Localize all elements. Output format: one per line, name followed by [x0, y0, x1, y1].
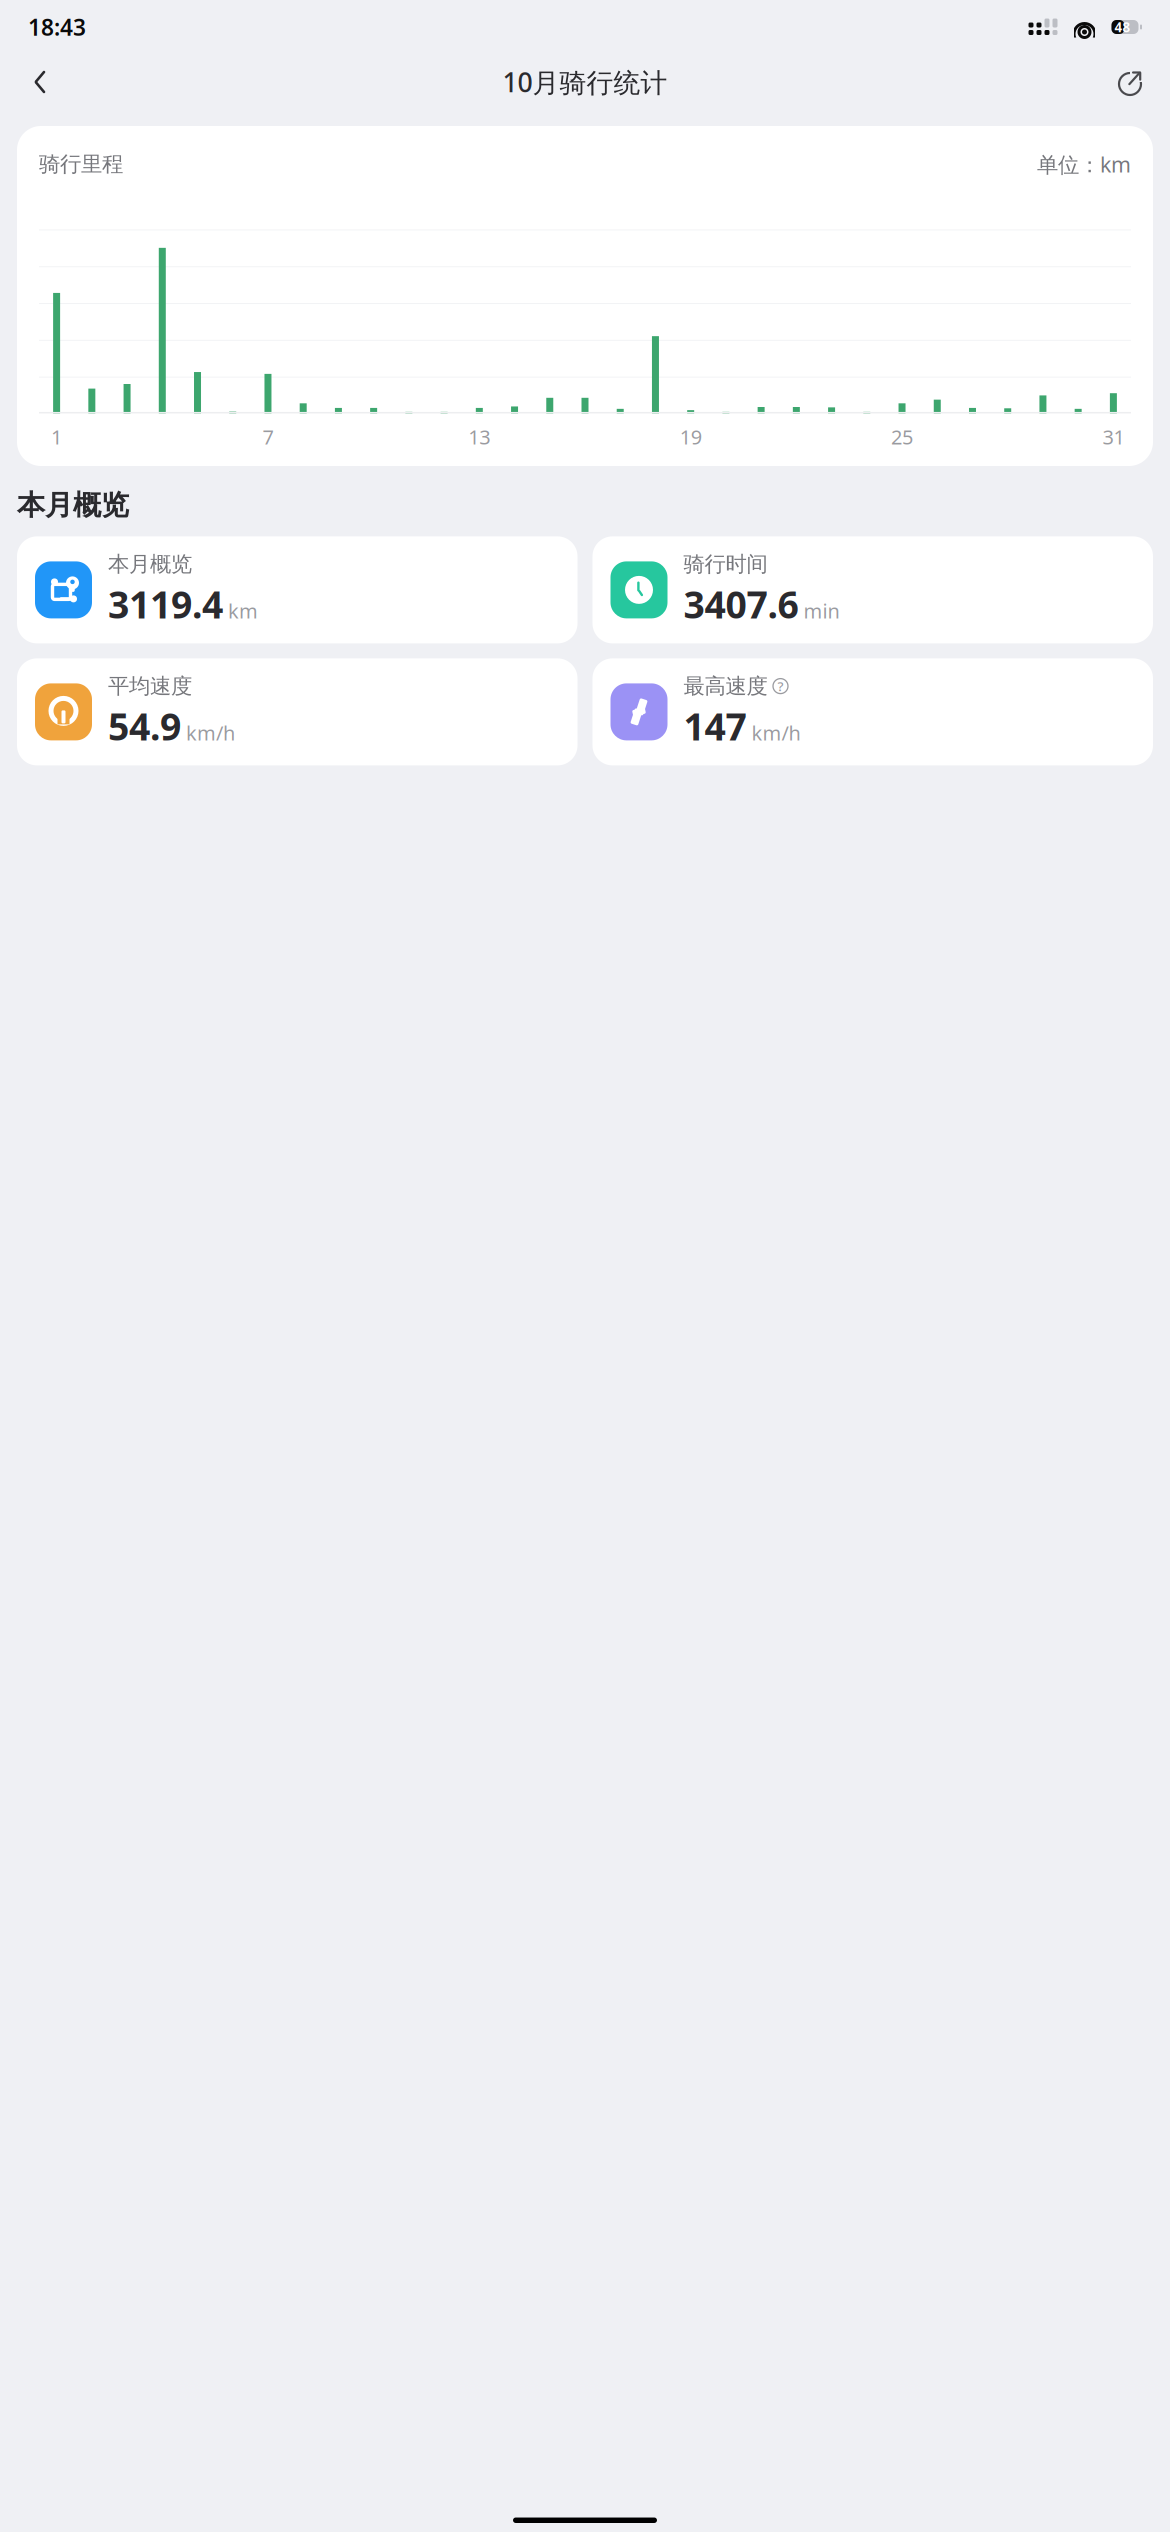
staticText: 54.9: [108, 701, 181, 751]
staticText: 平均速度: [108, 673, 192, 699]
staticText: 单位：km: [1037, 150, 1131, 178]
staticText: km/h: [751, 719, 800, 746]
button[interactable]: 返回: [18, 60, 62, 104]
button[interactable]: 本月概览: [17, 536, 577, 643]
staticText: 13: [468, 423, 490, 450]
staticText: ?: [777, 677, 783, 695]
staticText: 本月概览: [17, 488, 129, 522]
staticText: 1: [51, 423, 62, 450]
staticText: 最高速度: [683, 673, 767, 699]
staticText: 骑行时间: [683, 551, 767, 577]
button[interactable]: 最高速度: [592, 658, 1153, 765]
staticText: km: [228, 597, 258, 624]
staticText: 骑行里程: [39, 151, 123, 177]
staticText: 48: [1114, 18, 1130, 36]
button[interactable]: 平均速度: [17, 658, 577, 765]
staticText: 3119.4: [108, 579, 223, 629]
staticText: km/h: [186, 719, 235, 746]
staticText: 25: [891, 423, 913, 450]
staticText: min: [803, 597, 839, 624]
button[interactable]: 骑行时间: [592, 536, 1153, 643]
button[interactable]: 分享: [1108, 60, 1152, 104]
staticText: 本月概览: [108, 551, 192, 577]
staticText: 18:43: [28, 12, 86, 42]
staticText: 19: [680, 423, 702, 450]
staticText: 147: [683, 701, 746, 751]
staticText: 10月骑行统计: [502, 64, 667, 100]
staticText: 7: [262, 423, 273, 450]
staticText: 31: [1102, 423, 1124, 450]
staticText: 3407.6: [683, 579, 798, 629]
